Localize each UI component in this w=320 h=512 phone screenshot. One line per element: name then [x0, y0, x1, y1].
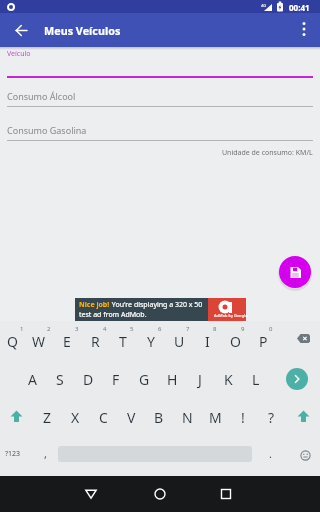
button[interactable]	[77, 480, 105, 508]
button[interactable]: F	[103, 367, 129, 391]
button[interactable]	[290, 328, 316, 348]
button[interactable]	[146, 480, 174, 508]
button[interactable]: N	[174, 405, 200, 429]
staticText: Y	[147, 332, 155, 351]
button[interactable]	[295, 445, 315, 465]
staticText: You're displaying a 320 x 50	[110, 300, 203, 310]
staticText: 5	[130, 325, 134, 333]
button[interactable]	[291, 405, 315, 427]
button[interactable]: ?123	[0, 444, 26, 464]
staticText: test ad from AdMob.	[79, 310, 147, 320]
staticText: H	[167, 370, 178, 389]
staticText: P	[259, 332, 268, 351]
button[interactable]: X	[62, 405, 88, 429]
button[interactable]	[279, 256, 311, 288]
staticText: U	[174, 332, 185, 351]
button[interactable]: O	[222, 329, 248, 353]
staticText: R	[91, 332, 100, 351]
button[interactable]	[286, 368, 308, 390]
staticText: 4	[103, 325, 107, 333]
button[interactable]: Y	[138, 329, 164, 353]
staticText: 3	[75, 325, 79, 333]
button[interactable]: W	[26, 329, 52, 353]
button[interactable]: Z	[34, 405, 60, 429]
staticText: 1	[20, 325, 24, 333]
staticText: Unidade de consumo: KM/L	[222, 148, 313, 158]
staticText: S	[56, 370, 64, 389]
staticText: ?123	[5, 449, 21, 459]
button[interactable]	[9, 18, 33, 42]
button[interactable]: P	[250, 329, 276, 353]
button[interactable]	[292, 17, 316, 41]
staticText: Consumo Gasolina	[7, 124, 87, 136]
staticText: 8	[213, 325, 217, 333]
staticText: AdMob by Google	[214, 313, 248, 318]
button[interactable]: .	[260, 443, 280, 463]
button[interactable]: R	[82, 329, 108, 353]
staticText: J	[198, 370, 202, 389]
staticText: Meus Veículos	[44, 23, 121, 38]
button[interactable]: S	[47, 367, 73, 391]
staticText: G	[139, 370, 150, 389]
button[interactable]: A	[19, 367, 45, 391]
staticText: Q	[7, 332, 18, 351]
staticText: .	[269, 446, 272, 461]
staticText: W	[32, 332, 46, 351]
staticText: L	[252, 370, 260, 389]
button[interactable]: L	[243, 367, 269, 391]
button[interactable]: ,	[35, 443, 55, 463]
button[interactable]	[4, 405, 28, 427]
button[interactable]: Q	[0, 329, 25, 353]
staticText: X	[71, 408, 80, 427]
staticText: 7	[186, 325, 190, 333]
button[interactable]: D	[75, 367, 101, 391]
button[interactable]: Nice job!	[75, 298, 246, 321]
button[interactable]: U	[166, 329, 192, 353]
staticText: 9	[241, 325, 245, 333]
staticText: B	[154, 408, 164, 427]
button[interactable]: !	[230, 405, 256, 429]
staticText: !	[241, 408, 245, 427]
staticText: F	[112, 370, 120, 389]
button[interactable]: B	[146, 405, 172, 429]
staticText: ,	[44, 446, 47, 461]
button[interactable]: E	[54, 329, 80, 353]
staticText: T	[119, 332, 127, 351]
staticText: 4G	[261, 3, 267, 8]
button[interactable]: V	[118, 405, 144, 429]
staticText: E	[63, 332, 71, 351]
staticText: 00:41	[289, 2, 310, 13]
button[interactable]	[212, 480, 240, 508]
staticText: M	[209, 408, 222, 427]
button[interactable]: I	[194, 329, 220, 353]
staticText: Consumo Álcool	[7, 90, 76, 102]
button[interactable]: T	[110, 329, 136, 353]
staticText: Nice job!	[79, 300, 110, 310]
button[interactable]: ?	[258, 405, 284, 429]
staticText: Veículo	[7, 49, 31, 59]
button[interactable]: G	[131, 367, 157, 391]
staticText: ?	[268, 408, 275, 427]
staticText: N	[182, 408, 193, 427]
staticText: 0	[269, 325, 273, 333]
staticText: 2	[47, 325, 51, 333]
button[interactable]: H	[159, 367, 185, 391]
staticText: A	[28, 370, 37, 389]
staticText: D	[83, 370, 94, 389]
button[interactable]: C	[90, 405, 116, 429]
staticText: K	[224, 370, 233, 389]
staticText: V	[127, 408, 136, 427]
staticText: 6	[158, 325, 162, 333]
staticText: C	[99, 408, 108, 427]
staticText: I	[205, 332, 210, 351]
button[interactable]: M	[202, 405, 228, 429]
button[interactable]: J	[187, 367, 213, 391]
staticText: O	[230, 332, 241, 351]
button[interactable]: K	[215, 367, 241, 391]
staticText: Z	[43, 408, 52, 427]
